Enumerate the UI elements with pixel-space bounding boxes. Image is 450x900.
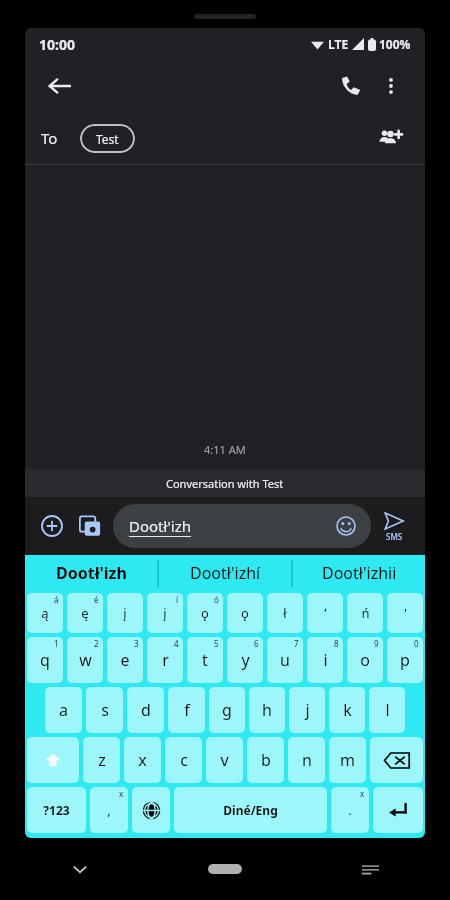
button[interactable]: ń <box>347 593 383 633</box>
staticText: ą <box>41 604 49 622</box>
button[interactable]: l <box>369 687 405 733</box>
button[interactable]: Dootł'izhii <box>293 555 425 591</box>
staticText: į <box>163 604 167 622</box>
button[interactable]: Dootł'izh <box>25 555 157 591</box>
staticText: 0 <box>414 638 419 649</box>
staticText: , <box>107 801 111 819</box>
staticText: j <box>305 699 310 721</box>
staticText: w <box>79 649 92 671</box>
button[interactable]: Shift <box>27 737 79 783</box>
button[interactable]: , <box>90 787 128 833</box>
staticText: x <box>119 788 124 799</box>
staticText: . <box>348 801 352 819</box>
button[interactable]: ?123 <box>27 787 86 833</box>
button[interactable]: Camera <box>71 507 109 545</box>
button[interactable]: b <box>247 737 284 783</box>
staticText: i <box>323 649 328 671</box>
button[interactable]: c <box>165 737 202 783</box>
staticText: Dootł'izh <box>129 516 191 536</box>
button[interactable]: a <box>45 687 82 733</box>
button[interactable]: Test <box>80 124 135 153</box>
button[interactable]: ' <box>387 593 423 633</box>
staticText: q <box>40 649 50 671</box>
button[interactable]: s <box>86 687 123 733</box>
button[interactable]: e <box>107 637 143 683</box>
staticText: f <box>184 699 190 721</box>
staticText: ó <box>214 594 219 605</box>
button[interactable]: Change keyboard <box>350 849 390 889</box>
button[interactable]: h <box>249 687 285 733</box>
button[interactable]: Emoji <box>331 511 361 541</box>
button[interactable]: ǫ <box>187 593 223 633</box>
staticText: 8 <box>334 638 339 649</box>
button[interactable]: o <box>347 637 383 683</box>
staticText: e <box>120 649 130 671</box>
button[interactable]: ą <box>27 593 63 633</box>
staticText: í <box>176 594 179 605</box>
button[interactable]: Dootł'izh <box>113 504 371 548</box>
button[interactable]: Enter <box>373 787 423 833</box>
button[interactable]: r <box>147 637 183 683</box>
button[interactable]: Back <box>39 66 79 106</box>
button[interactable]: Dootł'izhí <box>159 555 291 591</box>
button[interactable]: Add people <box>371 119 409 157</box>
button[interactable]: u <box>267 637 303 683</box>
button[interactable]: Send SMS <box>371 503 417 549</box>
button[interactable]: ǫ <box>227 593 263 633</box>
button[interactable]: Add attachment <box>33 507 71 545</box>
button[interactable]: ʼ <box>307 593 343 633</box>
button[interactable]: w <box>67 637 103 683</box>
button[interactable]: t <box>187 637 223 683</box>
button[interactable]: Hide keyboard <box>60 849 100 889</box>
staticText: Dootł'izhii <box>322 562 397 584</box>
staticText: ' <box>404 604 407 622</box>
staticText: 4:11 AM <box>204 442 246 457</box>
staticText: SMS <box>386 531 403 542</box>
button[interactable]: ł <box>267 593 303 633</box>
button[interactable]: q <box>27 637 63 683</box>
staticText: l <box>385 699 390 721</box>
button[interactable]: ę <box>67 593 103 633</box>
button[interactable]: į <box>107 593 143 633</box>
staticText: ǫ <box>201 604 209 622</box>
staticText: k <box>343 699 352 721</box>
button[interactable]: p <box>387 637 423 683</box>
staticText: p <box>400 649 410 671</box>
staticText: y <box>241 649 250 671</box>
staticText: Test <box>96 131 119 147</box>
staticText: 1 <box>54 638 59 649</box>
button[interactable]: i <box>307 637 343 683</box>
button[interactable]: More options <box>371 66 411 106</box>
button[interactable]: Backspace <box>370 737 423 783</box>
button[interactable]: . <box>331 787 369 833</box>
button[interactable]: Home <box>208 864 242 874</box>
button[interactable]: k <box>329 687 365 733</box>
staticText: o <box>360 649 370 671</box>
staticText: s <box>101 699 109 721</box>
button[interactable]: n <box>288 737 325 783</box>
staticText: ?123 <box>43 802 70 818</box>
staticText: 3 <box>134 638 139 649</box>
button[interactable]: f <box>168 687 205 733</box>
staticText: b <box>261 749 271 771</box>
button[interactable]: z <box>83 737 120 783</box>
staticText: 5 <box>214 638 219 649</box>
button[interactable]: y <box>227 637 263 683</box>
staticText: t <box>202 649 208 671</box>
button[interactable]: x <box>124 737 161 783</box>
button[interactable]: Diné/Eng <box>174 787 327 833</box>
button[interactable]: v <box>206 737 243 783</box>
button[interactable]: m <box>329 737 366 783</box>
staticText: 2 <box>94 638 99 649</box>
staticText: m <box>340 749 355 771</box>
button[interactable]: d <box>127 687 164 733</box>
staticText: h <box>262 699 272 721</box>
button[interactable]: g <box>209 687 245 733</box>
button[interactable]: į <box>147 593 183 633</box>
button[interactable]: Switch language <box>132 787 170 833</box>
staticText: á <box>54 594 59 605</box>
button[interactable]: Call <box>331 66 371 106</box>
staticText: ʼ <box>324 604 327 622</box>
staticText: g <box>222 699 232 721</box>
button[interactable]: j <box>289 687 325 733</box>
